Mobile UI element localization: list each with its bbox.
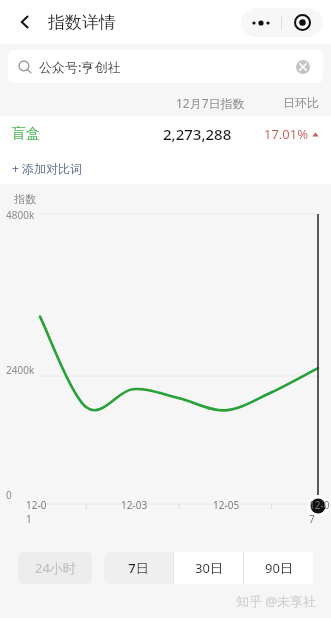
button[interactable]: 24小时 — [18, 552, 92, 584]
button[interactable]: 公众号:亨创社 — [8, 50, 323, 83]
staticText: + 添加对比词 — [12, 160, 82, 176]
staticText: 2400k — [6, 363, 35, 377]
staticText: 日环比 — [283, 95, 319, 110]
staticText: 指数 — [14, 192, 36, 206]
staticText: 4800k — [6, 208, 35, 222]
staticText: 12-07 — [309, 498, 331, 526]
staticText: 24小时 — [35, 559, 76, 577]
staticText: 知乎 @未享社 — [236, 592, 317, 610]
staticText: 12-05 — [213, 498, 240, 512]
button[interactable]: + 添加对比词 — [0, 152, 94, 184]
staticText: 7日 — [128, 559, 149, 577]
button[interactable]: More options — [241, 8, 281, 37]
staticText: 12月7日指数 — [176, 95, 245, 111]
staticText: 盲盒 — [12, 125, 40, 143]
button[interactable]: Back — [10, 7, 40, 37]
button[interactable]: 30日 — [174, 552, 243, 584]
staticText: 30日 — [195, 559, 223, 577]
staticText: 2,273,288 — [163, 124, 232, 144]
button[interactable]: Close mini program — [282, 8, 323, 37]
staticText: 17.01% — [264, 125, 309, 143]
staticText: 公众号:亨创社 — [39, 58, 121, 76]
staticText: 12-01 — [26, 498, 50, 526]
button[interactable]: 90日 — [244, 552, 313, 584]
staticText: 90日 — [265, 559, 293, 577]
staticText: 12-03 — [121, 498, 148, 512]
staticText: 指数详情 — [48, 12, 116, 33]
button[interactable]: 7日 — [104, 552, 173, 584]
button[interactable]: 盲盒 — [0, 116, 331, 152]
button[interactable]: Clear — [293, 57, 313, 77]
staticText: 0 — [6, 488, 12, 502]
